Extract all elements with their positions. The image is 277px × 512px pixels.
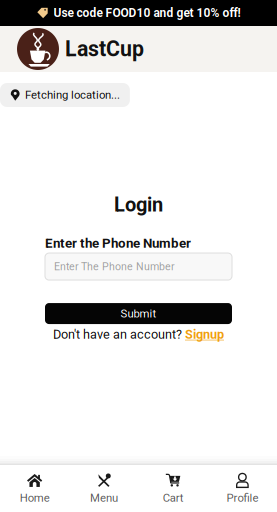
staticText: Enter the Phone Number: [45, 235, 191, 251]
button[interactable]: Signup: [185, 327, 224, 342]
staticText: Submit: [120, 307, 156, 320]
staticText: Don't have an account?: [53, 327, 182, 342]
button[interactable]: Home: [0, 462, 69, 512]
staticText: Signup: [185, 327, 224, 342]
button[interactable]: Profile: [208, 462, 277, 512]
button[interactable]: Fetching location...: [0, 83, 130, 107]
staticText: Use code FOOD10 and get 10% off!: [53, 6, 240, 20]
staticText: Login: [114, 193, 163, 216]
staticText: Menu: [90, 491, 118, 505]
staticText: Fetching location...: [25, 88, 120, 102]
staticText: Profile: [226, 491, 258, 505]
staticText: LastCup: [65, 36, 144, 61]
staticText: Enter The Phone Number: [54, 260, 175, 273]
staticText: Home: [20, 491, 50, 505]
button[interactable]: Enter The Phone Number: [45, 253, 232, 280]
button[interactable]: Menu: [69, 462, 138, 512]
button[interactable]: Cart: [138, 462, 208, 512]
staticText: Cart: [163, 491, 184, 505]
button[interactable]: Submit: [45, 303, 232, 324]
